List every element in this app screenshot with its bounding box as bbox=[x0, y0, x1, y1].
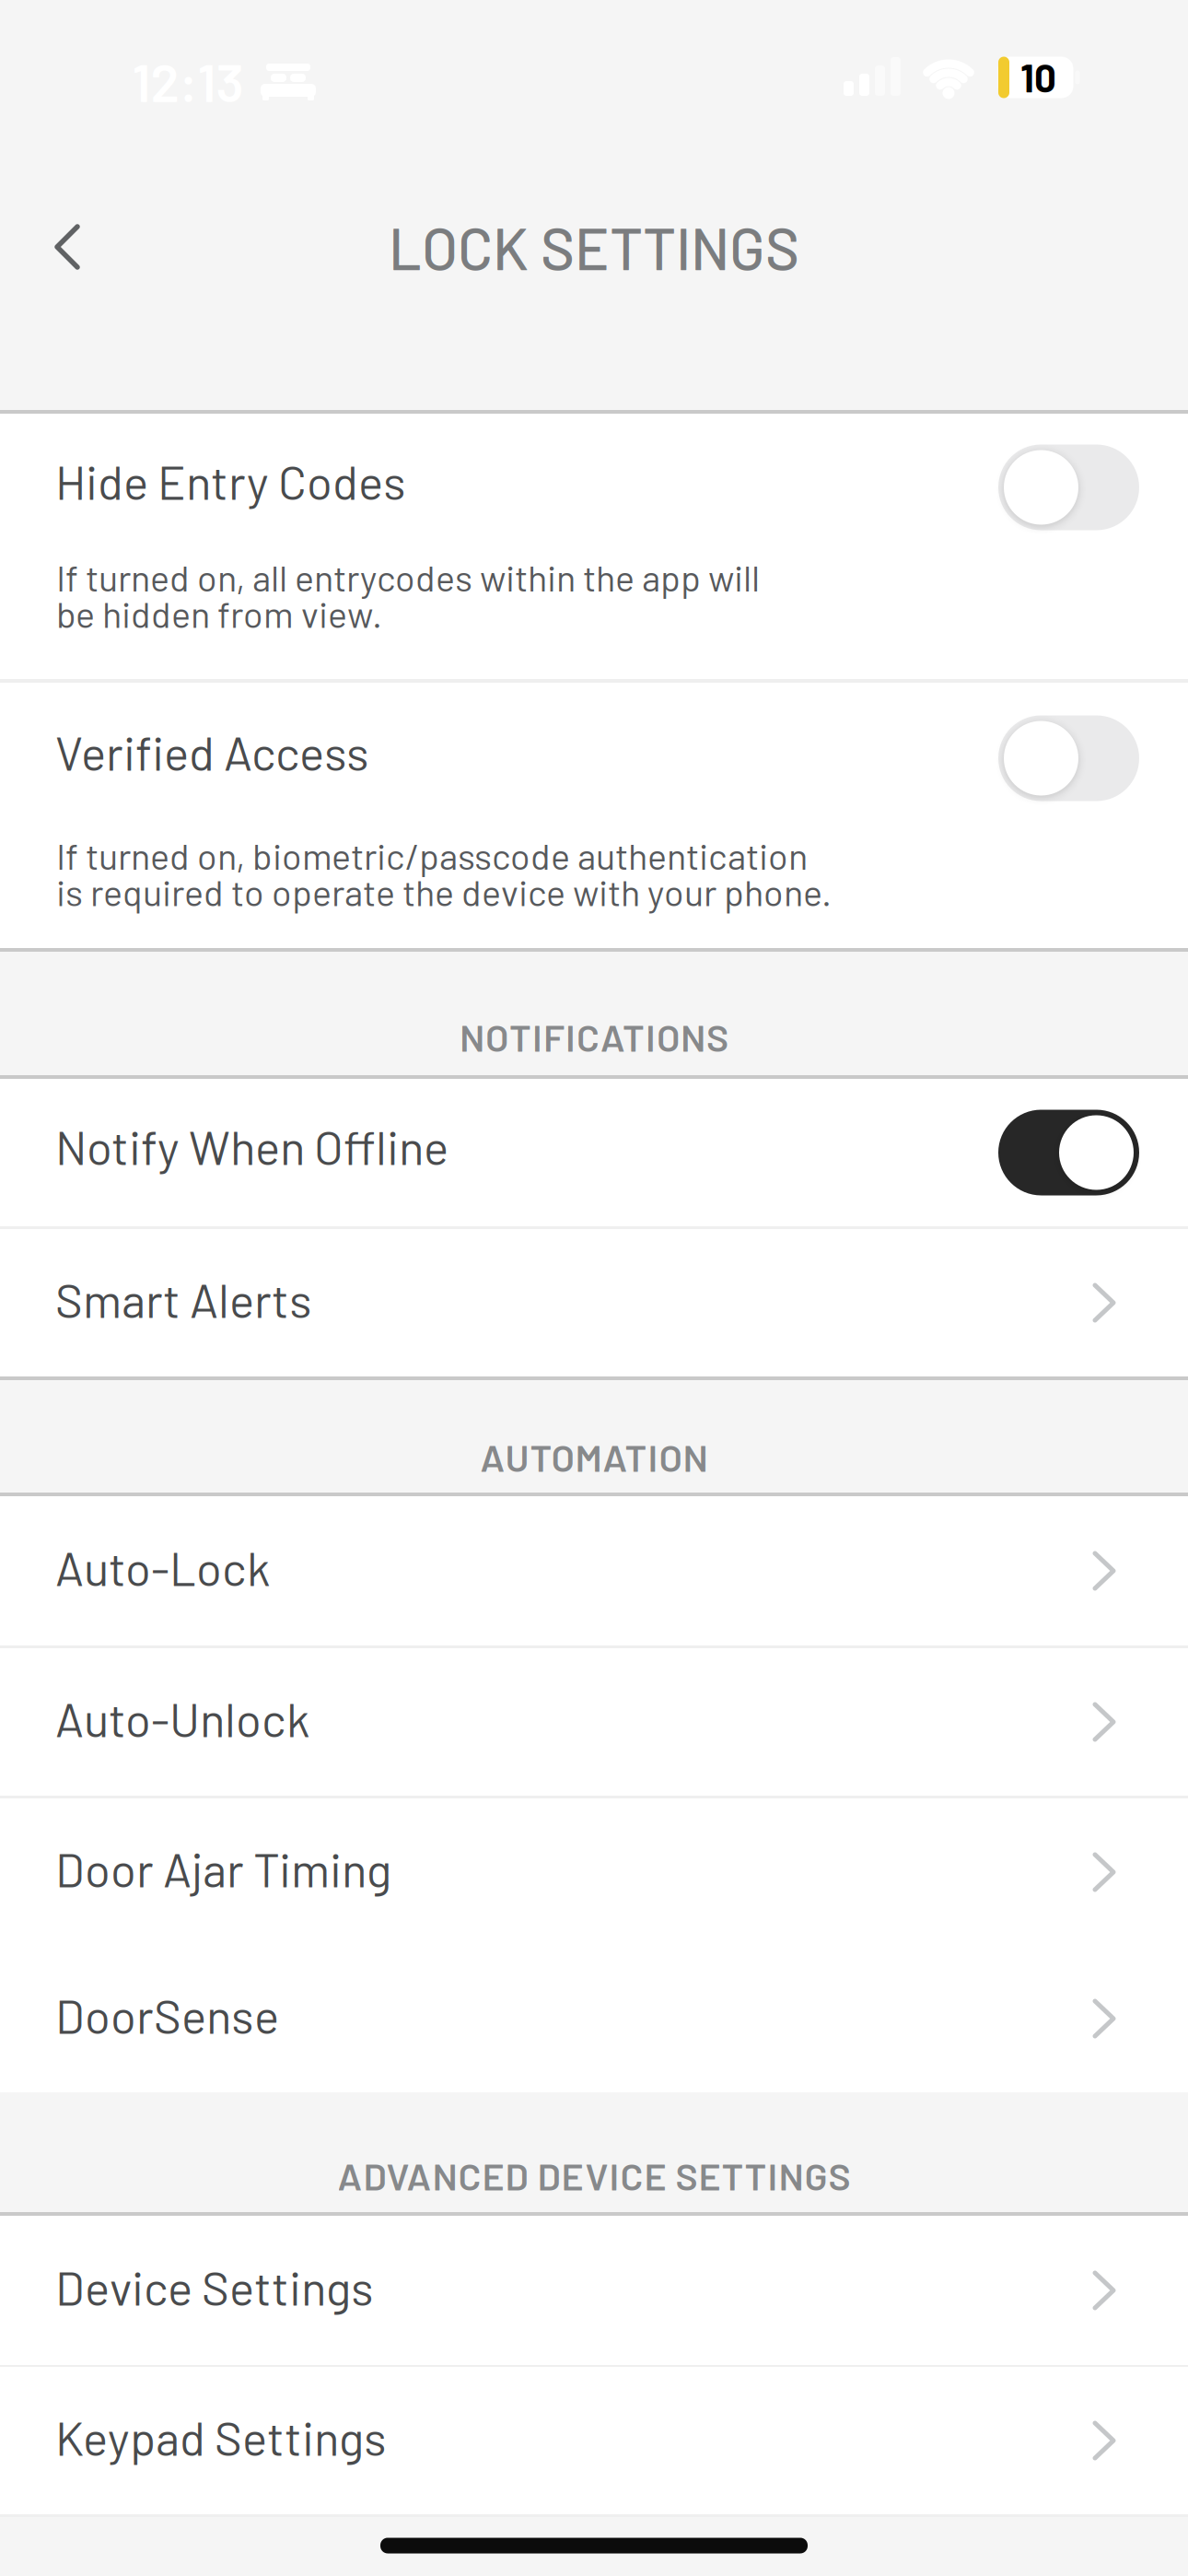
staticText: If turned on, biometric/passcode authent… bbox=[56, 833, 832, 913]
staticText: If turned on, all entrycodes within the … bbox=[56, 555, 760, 635]
button[interactable]: Smart Alerts bbox=[0, 1229, 1188, 1376]
button[interactable]: Notify When Offline bbox=[998, 1110, 1139, 1195]
button[interactable]: Auto-Lock bbox=[0, 1497, 1188, 1645]
staticText: ADVANCED DEVICE SETTINGS bbox=[338, 2153, 850, 2198]
button[interactable]: DoorSense bbox=[0, 1945, 1188, 2092]
staticText: Smart Alerts bbox=[55, 1271, 312, 1327]
button[interactable]: Verified Access bbox=[998, 715, 1139, 801]
staticText: NOTIFICATIONS bbox=[460, 1014, 728, 1059]
staticText: Door Ajar Timing bbox=[55, 1840, 391, 1897]
staticText: LOCK SETTINGS bbox=[389, 212, 799, 282]
button[interactable]: Door Ajar Timing bbox=[0, 1798, 1188, 1946]
staticText: Notify When Offline bbox=[55, 1118, 448, 1174]
staticText: 10 bbox=[1020, 54, 1056, 100]
staticText: DoorSense bbox=[55, 1987, 279, 2043]
staticText: AUTOMATION bbox=[480, 1434, 708, 1479]
button[interactable]: Auto-Unlock bbox=[0, 1648, 1188, 1796]
staticText: 12:13 bbox=[132, 50, 244, 113]
staticText: Device Settings bbox=[55, 2259, 374, 2315]
button[interactable]: Keypad Settings bbox=[0, 2367, 1188, 2514]
staticText: Auto-Unlock bbox=[55, 1690, 310, 1746]
staticText: Verified Access bbox=[55, 724, 369, 780]
staticText: Auto-Lock bbox=[55, 1539, 271, 1595]
staticText: Hide Entry Codes bbox=[55, 453, 406, 509]
button[interactable]: Hide Entry Codes bbox=[998, 445, 1139, 530]
staticText: Keypad Settings bbox=[55, 2409, 387, 2465]
button[interactable]: Device Settings bbox=[0, 2217, 1188, 2364]
button[interactable]: Back bbox=[31, 210, 105, 284]
